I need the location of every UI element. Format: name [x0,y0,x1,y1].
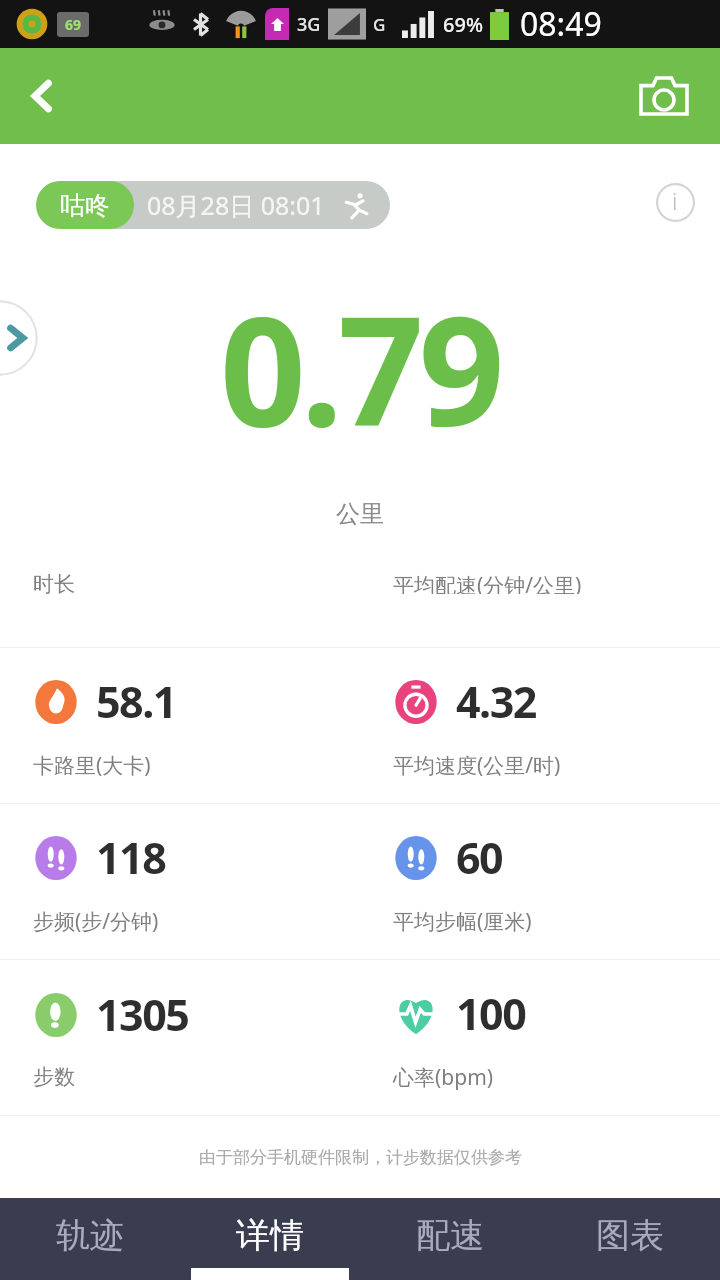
staticText: 58.1 [96,672,176,731]
staticText: 心率(bpm) [393,1063,494,1092]
staticText: 平均速度(公里/时) [393,751,561,780]
staticText: 轨迹 [56,1214,124,1257]
button[interactable]: 4.32 [360,648,720,803]
staticText: 60 [456,828,503,887]
staticText: 咕咚 [60,190,110,221]
button[interactable]: Info [650,177,700,227]
staticText: 平均配速(分钟/公里) [393,571,582,594]
button[interactable]: 100 [360,960,720,1115]
staticText: G [373,13,386,36]
staticText: 69 [65,15,82,34]
button[interactable]: 00:10:07 [0,545,360,594]
staticText: 详情 [236,1214,304,1257]
staticText: 步频(步/分钟) [33,907,159,936]
button[interactable]: 图表 [540,1198,720,1280]
staticText: 时长 [33,571,75,594]
staticText: 卡路里(大卡) [33,751,151,780]
button[interactable]: 10:04 [360,545,720,594]
button[interactable]: 58.1 [0,648,360,803]
staticText: 平均步幅(厘米) [393,907,532,936]
staticText: 3G [297,12,321,37]
button[interactable]: 详情 [180,1198,360,1280]
staticText: 由于部分手机硬件限制，计步数据仅供参考 [199,1147,522,1168]
button[interactable]: 咕咚 [36,181,390,229]
staticText: 1305 [96,985,189,1044]
button[interactable]: 118 [0,804,360,959]
button[interactable]: Back [10,64,74,128]
staticText: 配速 [416,1214,484,1257]
staticText: 步数 [33,1064,75,1090]
button[interactable]: 1305 [0,960,360,1115]
button[interactable]: Next lap [0,300,38,376]
staticText: 08月28日 08:01 [147,188,325,222]
button[interactable]: 60 [360,804,720,959]
staticText: i [672,185,678,216]
staticText: 69% [443,11,483,38]
staticText: 100 [456,984,526,1043]
staticText: 08:49 [520,2,602,46]
staticText: 118 [96,828,166,887]
button[interactable]: Camera [632,64,696,128]
button[interactable]: 轨迹 [0,1198,180,1280]
staticText: 0.79 [220,266,500,470]
staticText: 4.32 [456,672,536,731]
staticText: 图表 [596,1214,664,1257]
staticText: 公里 [336,499,384,529]
button[interactable]: 配速 [360,1198,540,1280]
